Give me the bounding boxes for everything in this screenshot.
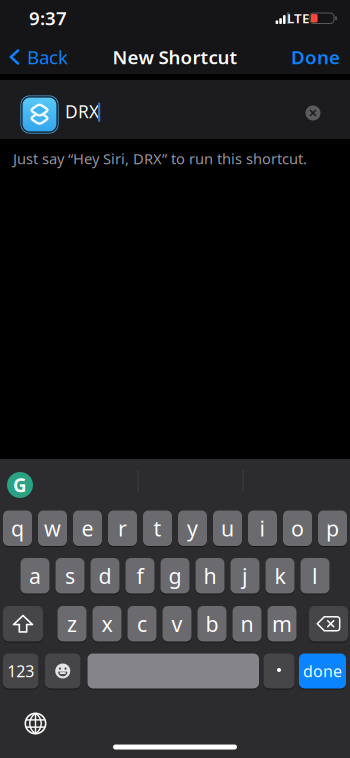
button[interactable]: s bbox=[55, 558, 84, 593]
button[interactable]: Shift bbox=[3, 606, 43, 641]
staticText: i bbox=[259, 514, 265, 542]
staticText: t bbox=[153, 514, 161, 542]
staticText: k bbox=[274, 562, 285, 590]
button[interactable]: Delete bbox=[309, 606, 348, 641]
staticText: w bbox=[44, 514, 61, 542]
button[interactable]: c bbox=[127, 606, 156, 641]
staticText: DRX bbox=[65, 100, 99, 123]
button[interactable]: Space bbox=[87, 653, 259, 688]
staticText: c bbox=[137, 610, 147, 638]
button[interactable]: Done bbox=[280, 46, 340, 68]
button[interactable]: done bbox=[299, 653, 346, 688]
staticText: 9:37 bbox=[29, 6, 67, 30]
button[interactable]: d bbox=[90, 558, 119, 593]
staticText: e bbox=[81, 514, 93, 542]
staticText: d bbox=[98, 562, 111, 590]
button[interactable]: j bbox=[230, 558, 259, 593]
staticText: v bbox=[171, 610, 182, 638]
staticText: o bbox=[291, 514, 304, 542]
staticText: b bbox=[205, 610, 218, 638]
staticText: m bbox=[272, 610, 292, 638]
button[interactable]: 123 bbox=[3, 653, 38, 688]
button[interactable]: k bbox=[265, 558, 294, 593]
staticText: s bbox=[65, 562, 75, 590]
staticText: l bbox=[312, 562, 318, 590]
button[interactable]: e bbox=[73, 510, 102, 546]
staticText: q bbox=[11, 514, 24, 542]
staticText: New Shortcut bbox=[112, 45, 237, 69]
button[interactable]: o bbox=[283, 510, 312, 546]
staticText: LTE bbox=[287, 9, 309, 27]
button[interactable]: i bbox=[248, 510, 277, 546]
button[interactable]: q bbox=[3, 510, 32, 546]
button[interactable]: w bbox=[38, 510, 67, 546]
button[interactable]: r bbox=[108, 510, 137, 546]
staticText: r bbox=[118, 514, 127, 542]
button[interactable]: n bbox=[232, 606, 261, 641]
button[interactable]: u bbox=[213, 510, 242, 546]
staticText: f bbox=[136, 562, 143, 590]
staticText: h bbox=[203, 562, 216, 590]
staticText: j bbox=[242, 562, 248, 590]
button[interactable]: z bbox=[57, 606, 86, 641]
button[interactable]: l bbox=[300, 558, 329, 593]
staticText: Done bbox=[291, 45, 340, 69]
button[interactable]: Emoji bbox=[45, 653, 80, 688]
staticText: a bbox=[29, 562, 41, 590]
staticText: p bbox=[326, 514, 339, 542]
button[interactable]: p bbox=[318, 510, 347, 546]
staticText: x bbox=[101, 610, 112, 638]
staticText: u bbox=[221, 514, 234, 542]
staticText: z bbox=[67, 610, 77, 638]
staticText: G bbox=[13, 473, 27, 497]
button[interactable]: y bbox=[178, 510, 207, 546]
button[interactable]: Back bbox=[9, 46, 68, 68]
staticText: Back bbox=[27, 45, 68, 69]
button[interactable]: v bbox=[162, 606, 191, 641]
staticText: n bbox=[240, 610, 253, 638]
staticText: done bbox=[303, 660, 342, 682]
button[interactable]: b bbox=[197, 606, 226, 641]
button[interactable]: Clear text bbox=[305, 105, 320, 120]
staticText: y bbox=[187, 514, 198, 542]
button[interactable]: h bbox=[195, 558, 224, 593]
staticText: g bbox=[168, 562, 181, 590]
button[interactable]: f bbox=[125, 558, 154, 593]
button[interactable]: a bbox=[20, 558, 49, 593]
staticText: Just say “Hey Siri, DRX” to run this sho… bbox=[13, 149, 307, 168]
button[interactable]: x bbox=[92, 606, 121, 641]
button[interactable]: t bbox=[143, 510, 172, 546]
button[interactable]: Choose icon bbox=[20, 95, 58, 133]
button[interactable]: g bbox=[160, 558, 189, 593]
button[interactable]: Period bbox=[263, 653, 294, 688]
staticText: 123 bbox=[7, 660, 34, 682]
button[interactable]: m bbox=[267, 606, 296, 641]
button[interactable]: Grammarly bbox=[7, 472, 33, 498]
button[interactable]: Next keyboard bbox=[24, 712, 46, 734]
